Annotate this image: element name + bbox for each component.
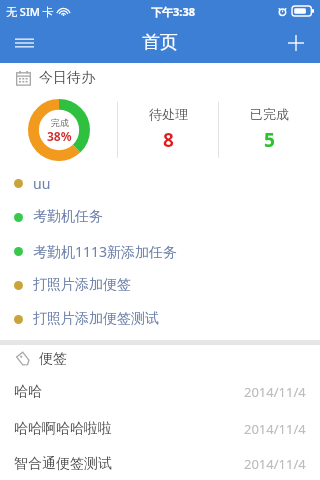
button[interactable]: 智合通便签测试 <box>0 447 320 480</box>
staticText: 打照片添加便签测试 <box>33 310 159 328</box>
staticText: 考勤机1113新添加任务 <box>33 242 178 261</box>
staticText: 下午3:38 <box>151 4 195 19</box>
staticText: 2014/11/4 <box>244 420 306 438</box>
staticText: 首页 <box>142 31 178 54</box>
button[interactable]: 哈哈啊哈哈啦啦 <box>0 410 320 447</box>
staticText: 2014/11/4 <box>244 383 306 401</box>
button[interactable]: 已完成 <box>219 106 320 153</box>
staticText: 今日待办 <box>39 69 95 87</box>
staticText: 无 SIM 卡 <box>6 4 54 19</box>
staticText: 待处理 <box>149 106 188 122</box>
button[interactable]: 哈哈 <box>0 373 320 410</box>
staticText: 哈哈 <box>14 383 42 401</box>
button[interactable]: 打照片添加便签测试 <box>0 302 320 336</box>
staticText: 智合通便签测试 <box>14 455 112 473</box>
staticText: 2014/11/4 <box>244 455 306 473</box>
button[interactable]: 考勤机任务 <box>0 200 320 234</box>
staticText: 哈哈啊哈哈啦啦 <box>14 420 112 438</box>
staticText: 考勤机任务 <box>33 208 103 226</box>
button[interactable]: uu <box>0 166 320 200</box>
button[interactable]: 考勤机1113新添加任务 <box>0 234 320 268</box>
staticText: 完成 <box>51 117 69 128</box>
button[interactable]: Add <box>272 22 320 63</box>
staticText: 打照片添加便签 <box>33 276 131 294</box>
staticText: 5 <box>264 127 275 153</box>
button[interactable]: 打照片添加便签 <box>0 268 320 302</box>
staticText: 38% <box>47 128 72 144</box>
button[interactable]: Menu <box>0 22 48 63</box>
button[interactable]: 待处理 <box>118 106 218 153</box>
staticText: 8 <box>163 127 174 153</box>
staticText: 便签 <box>39 350 67 368</box>
staticText: 已完成 <box>250 106 289 122</box>
staticText: uu <box>33 174 51 193</box>
